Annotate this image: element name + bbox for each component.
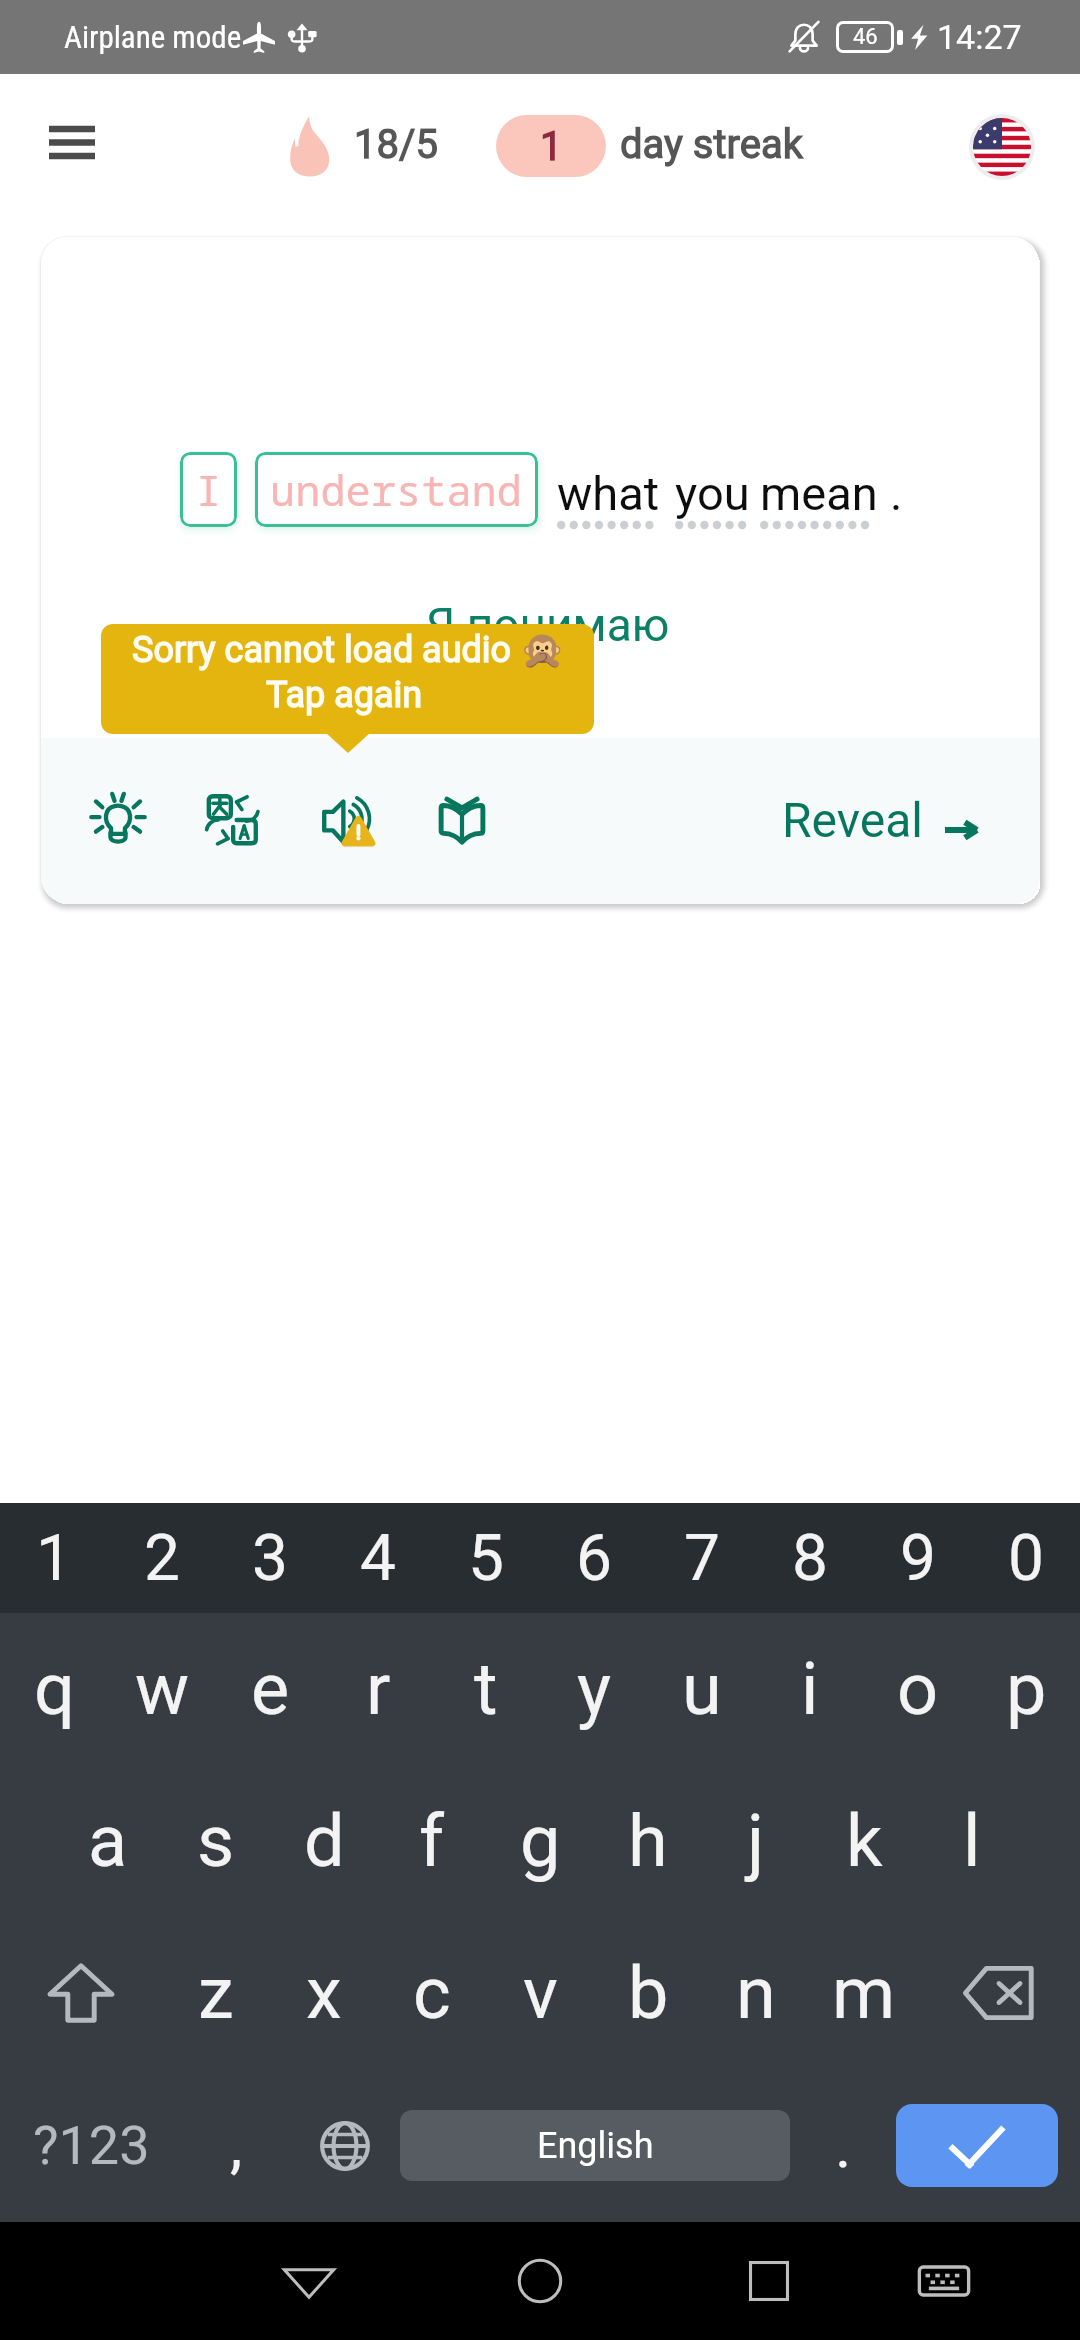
button[interactable]: f [378, 1765, 486, 1917]
button[interactable]: 4 [324, 1503, 432, 1613]
staticText: Я понимаю [426, 598, 670, 652]
staticText: Reveal [782, 792, 923, 848]
button[interactable]: . [790, 2069, 896, 2222]
staticText: day streak [620, 121, 804, 168]
staticText: x [306, 1951, 342, 2035]
button[interactable]: u [648, 1613, 756, 1765]
button[interactable]: Menu [25, 99, 119, 193]
button[interactable]: k [810, 1765, 918, 1917]
button[interactable]: English [400, 2110, 790, 2181]
staticText: l [963, 1799, 981, 1883]
staticText: c [413, 1951, 451, 2035]
button[interactable]: , [183, 2069, 289, 2222]
button[interactable]: 3 [216, 1503, 324, 1613]
staticText: Sorry cannot load audio 🙊 [132, 629, 565, 671]
button[interactable]: Enter [896, 2104, 1058, 2187]
button[interactable]: m [810, 1917, 918, 2069]
staticText: 7 [684, 1521, 720, 1596]
button[interactable]: d [270, 1765, 378, 1917]
button[interactable]: h [594, 1765, 702, 1917]
button[interactable]: Change language [289, 2069, 400, 2222]
staticText: 1 [540, 123, 563, 170]
staticText: r [366, 1647, 391, 1731]
staticText: 6 [576, 1521, 612, 1596]
button[interactable]: y [540, 1613, 648, 1765]
staticText: v [523, 1951, 558, 2035]
button[interactable]: Recents [721, 2233, 817, 2329]
button[interactable]: g [486, 1765, 594, 1917]
button[interactable]: q [0, 1613, 108, 1765]
button[interactable]: Dictionary [422, 780, 502, 860]
button[interactable]: I [180, 452, 237, 527]
button[interactable]: Hint [78, 780, 158, 860]
staticText: 3 [252, 1521, 288, 1596]
button[interactable]: a [54, 1765, 162, 1917]
staticText: g [520, 1799, 561, 1883]
button[interactable]: Home [492, 2233, 588, 2329]
button[interactable]: i [756, 1613, 864, 1765]
button[interactable]: j [702, 1765, 810, 1917]
button[interactable]: 7 [648, 1503, 756, 1613]
staticText: 4 [360, 1521, 396, 1596]
button[interactable]: w [108, 1613, 216, 1765]
staticText: t [474, 1647, 498, 1731]
staticText: 46 [853, 24, 878, 50]
staticText: o [897, 1647, 939, 1731]
staticText: . [835, 2109, 852, 2182]
staticText: f [419, 1799, 445, 1883]
button[interactable]: r [324, 1613, 432, 1765]
button[interactable]: t [432, 1613, 540, 1765]
button[interactable]: Translate [192, 780, 272, 860]
staticText: mean [760, 466, 878, 521]
staticText: what [557, 466, 660, 521]
button[interactable]: Language [958, 103, 1046, 191]
button[interactable]: l [918, 1765, 1026, 1917]
staticText: 2 [144, 1521, 180, 1596]
button[interactable]: 1 [0, 1503, 108, 1613]
staticText: b [628, 1951, 669, 2035]
button[interactable]: o [864, 1613, 972, 1765]
staticText: y [577, 1647, 612, 1731]
button[interactable]: z [162, 1917, 270, 2069]
staticText: ?123 [33, 2114, 150, 2177]
staticText: 0 [1008, 1521, 1044, 1596]
button[interactable]: understand [255, 452, 538, 527]
button[interactable]: b [594, 1917, 702, 2069]
staticText: Airplane mode [64, 19, 242, 55]
button[interactable]: Shift [0, 1917, 162, 2069]
button[interactable]: 5 [432, 1503, 540, 1613]
button[interactable]: c [378, 1917, 486, 2069]
staticText: n [736, 1951, 776, 2035]
staticText: understand [270, 461, 523, 518]
button[interactable]: n [702, 1917, 810, 2069]
staticText: I [196, 461, 222, 518]
button[interactable]: p [972, 1613, 1080, 1765]
button[interactable]: e [216, 1613, 324, 1765]
button[interactable]: 2 [108, 1503, 216, 1613]
button[interactable]: Play audio [308, 780, 388, 860]
button[interactable]: Back [261, 2233, 357, 2329]
button[interactable]: ?123 [0, 2069, 183, 2222]
staticText: English [537, 2125, 654, 2167]
button[interactable]: x [270, 1917, 378, 2069]
staticText: 8 [792, 1521, 828, 1596]
button[interactable]: 1 [496, 115, 606, 177]
staticText: i [801, 1647, 819, 1731]
staticText: a [88, 1799, 128, 1883]
staticText: . [890, 466, 903, 521]
staticText: q [34, 1647, 75, 1731]
staticText: 14:27 [937, 17, 1022, 57]
staticText: 1 [36, 1521, 72, 1596]
button[interactable]: 8 [756, 1503, 864, 1613]
button[interactable]: 9 [864, 1503, 972, 1613]
button[interactable]: Reveal [782, 788, 977, 852]
staticText: 5 [468, 1521, 504, 1596]
button[interactable]: 0 [972, 1503, 1080, 1613]
button[interactable]: 6 [540, 1503, 648, 1613]
staticText: 9 [900, 1521, 936, 1596]
button[interactable]: Hide keyboard [896, 2233, 992, 2329]
button[interactable]: s [162, 1765, 270, 1917]
staticText: 18/5 [354, 121, 438, 168]
button[interactable]: Backspace [918, 1917, 1080, 2069]
button[interactable]: v [486, 1917, 594, 2069]
